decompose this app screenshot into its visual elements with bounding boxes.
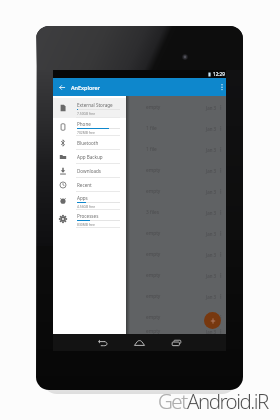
button[interactable]: Downloads [53, 164, 126, 178]
staticText: Jan 3 [206, 294, 217, 300]
button[interactable]: App Backup [53, 150, 126, 164]
button[interactable]: Back [53, 78, 70, 96]
staticText: empty [146, 188, 161, 195]
staticText: Jan 3 [206, 231, 217, 237]
staticText: Jan 3 [206, 168, 217, 174]
staticText: AnExplorer [71, 84, 101, 91]
staticText: 702MB free [77, 130, 95, 134]
button[interactable]: Create new [204, 312, 221, 329]
staticText: Downloads [77, 168, 102, 174]
staticText: Jan 3 [206, 189, 217, 195]
staticText: External Storage [77, 102, 113, 108]
staticText: Jan 3 [206, 329, 217, 335]
button[interactable]: empty [53, 307, 226, 328]
staticText: empty [146, 251, 161, 258]
staticText: empty [146, 272, 161, 279]
staticText: Jan 3 [206, 105, 217, 111]
button[interactable]: Recent [53, 178, 126, 192]
button[interactable]: empty [53, 328, 226, 335]
staticText: 830MB free [77, 222, 95, 226]
staticText: App Backup [77, 154, 103, 160]
staticText: Apps [77, 195, 88, 201]
staticText: Bluetooth [77, 140, 99, 146]
staticText: Recent [77, 182, 92, 188]
staticText: Jan 3 [206, 126, 217, 132]
staticText: empty [146, 314, 161, 321]
staticText: 12:29 [213, 71, 225, 77]
button[interactable]: empty [53, 181, 226, 202]
staticText: empty [146, 328, 161, 335]
staticText: empty [146, 167, 161, 174]
button[interactable]: empty [53, 265, 226, 286]
button[interactable]: empty [53, 244, 226, 265]
staticText: 3 files [146, 209, 160, 216]
staticText: 1 file [146, 125, 157, 132]
staticText: Jan 3 [206, 315, 217, 321]
staticText: Jan 3 [206, 273, 217, 279]
button[interactable]: More options [217, 78, 226, 96]
button[interactable]: empty [53, 160, 226, 181]
button[interactable]: 1 file [53, 118, 226, 139]
staticText: Processes [77, 213, 99, 219]
staticText: empty [146, 293, 161, 300]
staticText: 7.50GB free [77, 111, 96, 115]
staticText: empty [146, 230, 161, 237]
staticText: 4.56GB free [77, 204, 96, 208]
staticText: Phone [77, 121, 91, 127]
button[interactable]: Phone [53, 118, 126, 136]
button[interactable]: Back [95, 334, 111, 351]
button[interactable]: Apps [53, 192, 126, 210]
staticText: empty [146, 104, 161, 111]
button[interactable]: 1 file [53, 139, 226, 160]
button[interactable]: External Storage [53, 98, 126, 118]
button[interactable]: Bluetooth [53, 136, 126, 150]
staticText: 1 file [146, 146, 157, 153]
button[interactable]: Recent apps [168, 334, 184, 351]
button[interactable]: empty [53, 286, 226, 307]
staticText: Jan 3 [206, 252, 217, 258]
staticText: Get [158, 387, 187, 415]
button[interactable]: empty [53, 97, 226, 118]
staticText: Jan 3 [206, 210, 217, 216]
button[interactable]: Processes [53, 210, 126, 228]
staticText: Android.iR [187, 387, 268, 415]
button[interactable]: 3 files [53, 202, 226, 223]
staticText: Jan 3 [206, 147, 217, 153]
button[interactable]: empty [53, 223, 226, 244]
button[interactable]: Home [131, 334, 147, 351]
